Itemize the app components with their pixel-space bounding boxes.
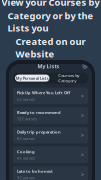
button[interactable]: Courses by Category — [51, 75, 86, 82]
staticText: 8 Courses — [17, 136, 35, 141]
staticText: Late to be honest — [17, 169, 53, 174]
staticText: Ready to recommend — [17, 110, 61, 115]
button[interactable]: Daily trip preparation — [13, 127, 88, 143]
staticText: 4 Courses — [17, 155, 35, 161]
staticText: > — [81, 151, 84, 158]
button[interactable]: More options — [83, 64, 87, 68]
staticText: Pick Up Where You Left Off — [17, 90, 70, 95]
staticText: > — [81, 112, 84, 119]
staticText: 5 Courses — [17, 96, 35, 102]
staticText: Courses by Category — [58, 73, 79, 83]
staticText: 12 Courses — [17, 116, 37, 121]
staticText: > — [81, 92, 84, 99]
staticText: My Lists — [37, 63, 59, 70]
staticText: View your Courses by — [1, 0, 99, 8]
button[interactable]: Cooking — [13, 146, 88, 163]
staticText: Daily trip preparation — [17, 129, 61, 135]
staticText: Category or by the Lists you — [7, 9, 93, 34]
staticText: 9 Courses — [17, 175, 35, 180]
staticText: My Personal Lists — [16, 75, 49, 81]
button[interactable]: Ready to recommend — [13, 107, 88, 124]
button[interactable]: My Personal Lists — [15, 75, 49, 82]
staticText: > — [81, 132, 84, 139]
staticText: Created on our Website — [15, 35, 85, 60]
staticText: > — [81, 171, 84, 178]
staticText: Cooking — [17, 149, 35, 154]
button[interactable]: Pick Up Where You Left Off — [13, 88, 88, 104]
button[interactable]: Late to be honest — [13, 166, 88, 180]
